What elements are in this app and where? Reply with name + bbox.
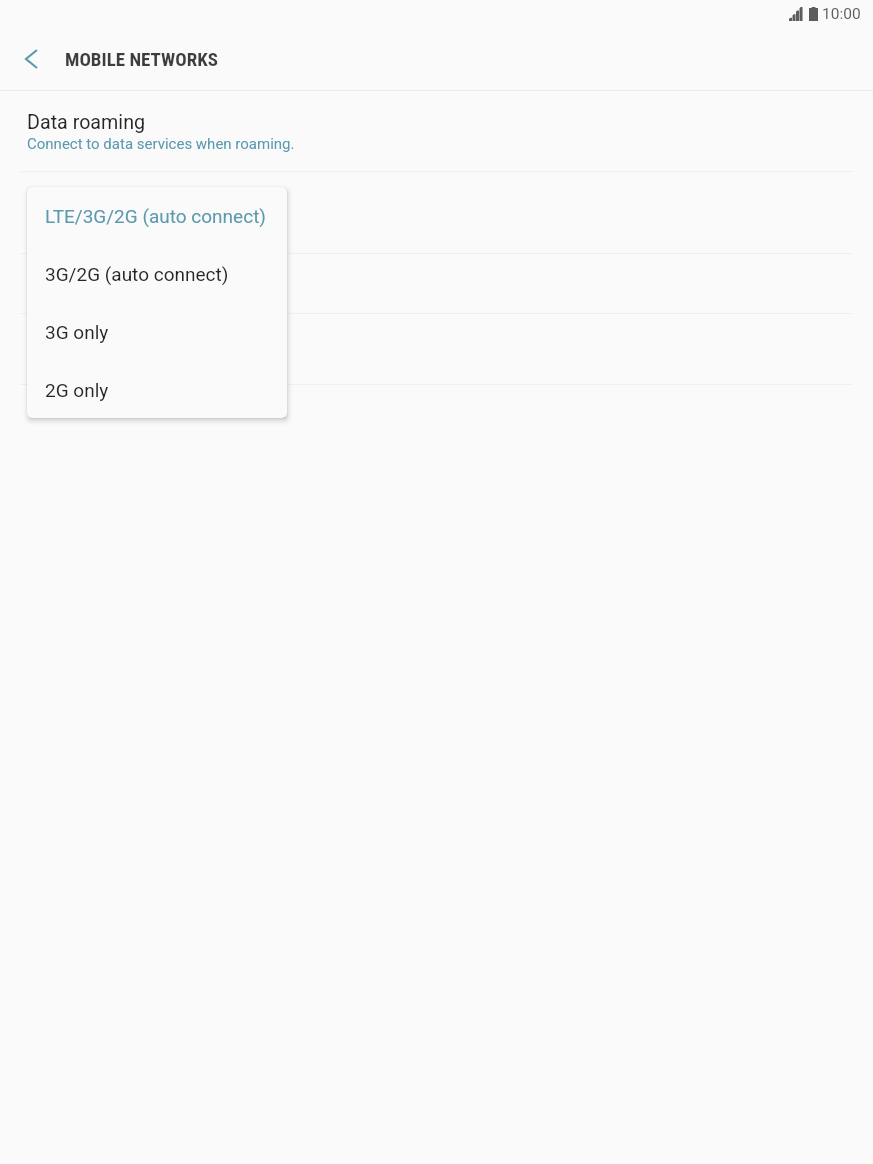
button[interactable]: Back	[4, 31, 58, 87]
button[interactable]	[0, 314, 873, 384]
staticText: Connect to data services when roaming.	[27, 135, 295, 153]
button[interactable]: LTE/3G/2G (auto connect)	[27, 187, 287, 245]
button[interactable]	[0, 172, 873, 253]
staticText: 3G/2G (auto connect)	[45, 263, 229, 285]
staticText: Data roaming	[27, 111, 146, 134]
button[interactable]	[0, 254, 873, 313]
staticText: 3G only	[45, 321, 109, 343]
button[interactable]: 3G only	[27, 303, 287, 361]
staticText: MOBILE NETWORKS	[65, 48, 219, 70]
staticText: LTE/3G/2G (auto connect)	[45, 205, 266, 227]
button[interactable]: 3G/2G (auto connect)	[27, 245, 287, 303]
staticText: 2G only	[45, 379, 109, 401]
button[interactable]: 2G only	[27, 361, 287, 418]
button[interactable]: Data roaming	[0, 91, 873, 171]
staticText: 10:00	[822, 5, 861, 23]
